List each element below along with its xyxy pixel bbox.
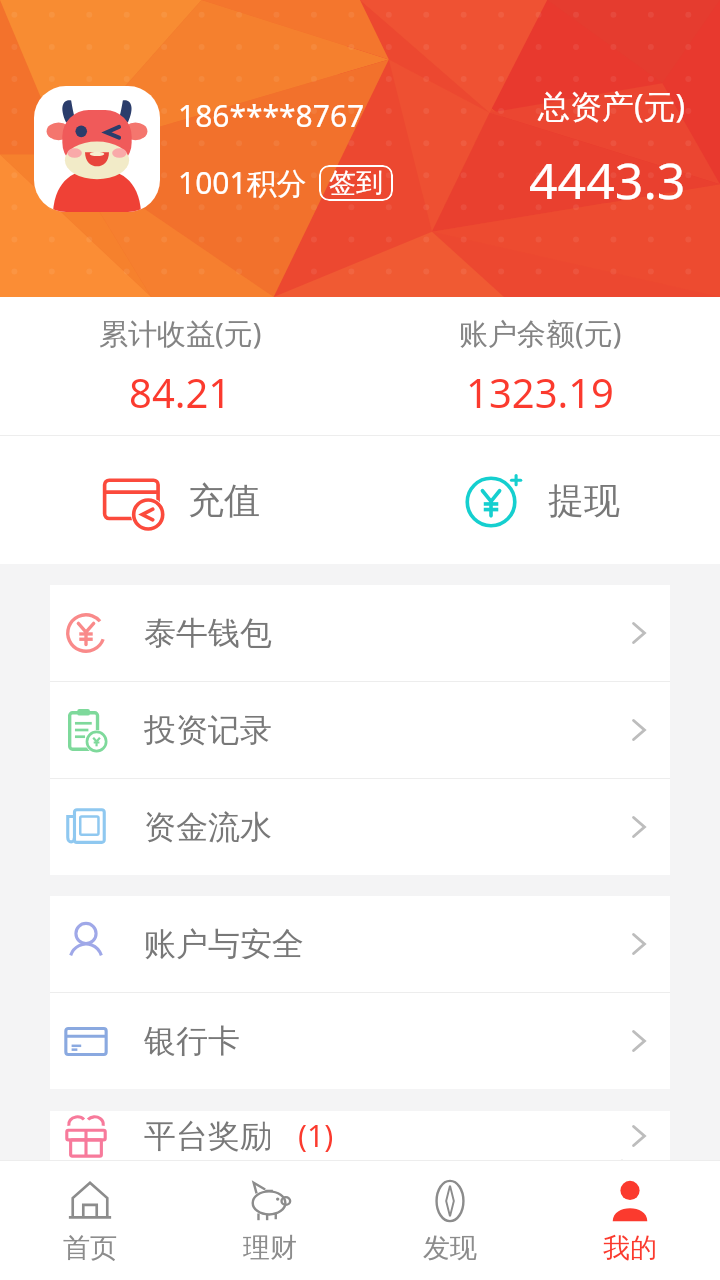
staticText: 1001积分 (178, 162, 307, 203)
staticText: 186****8767 (178, 95, 365, 136)
staticText: 提现 (548, 478, 620, 523)
button[interactable]: 用户头像 (34, 86, 160, 212)
staticText: 泰牛钱包 (144, 613, 272, 653)
button[interactable]: 累计收益(元) (0, 297, 360, 435)
staticText: 资金流水 (144, 807, 272, 847)
staticText: (1) (298, 1115, 334, 1156)
button[interactable]: 平台奖励 (50, 1111, 670, 1160)
staticText: 账户与安全 (144, 924, 304, 964)
button[interactable]: 账户余额(元) (360, 297, 720, 435)
staticText: 84.21 (129, 365, 232, 419)
button[interactable]: 充值 (0, 436, 360, 564)
button[interactable]: 投资记录 (50, 682, 670, 778)
staticText: 账户余额(元) (459, 313, 622, 353)
button[interactable]: 泰牛钱包 (50, 585, 670, 681)
staticText: 首页 (63, 1231, 117, 1265)
staticText: 充值 (188, 478, 260, 523)
button[interactable]: 资金流水 (50, 779, 670, 875)
button[interactable]: 首页 (0, 1161, 180, 1280)
staticText: 我的 (603, 1231, 657, 1265)
button[interactable]: 理财 (180, 1161, 360, 1280)
staticText: 发现 (423, 1231, 477, 1265)
button[interactable]: 我的 (540, 1161, 720, 1280)
staticText: 银行卡 (144, 1021, 240, 1061)
button[interactable]: 账户与安全 (50, 896, 670, 992)
staticText: 总资产(元) (538, 84, 686, 128)
button[interactable]: 签到 (319, 165, 393, 201)
staticText: 平台奖励 (144, 1116, 272, 1156)
staticText: 累计收益(元) (99, 313, 262, 353)
staticText: 理财 (243, 1231, 297, 1265)
button[interactable]: 提现 (360, 436, 720, 564)
staticText: 签到 (329, 166, 383, 200)
staticText: 4443.3 (529, 146, 686, 214)
staticText: 投资记录 (144, 710, 272, 750)
button[interactable]: 银行卡 (50, 993, 670, 1089)
button[interactable]: 发现 (360, 1161, 540, 1280)
staticText: 1323.19 (466, 365, 614, 419)
